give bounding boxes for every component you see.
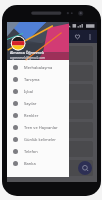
button[interactable] xyxy=(11,103,93,119)
button[interactable]: Banka xyxy=(7,157,69,169)
button[interactable] xyxy=(11,65,93,81)
button[interactable]: Günlük kelimeler xyxy=(7,133,69,145)
staticText: Tanışma xyxy=(24,77,40,82)
staticText: Merhabalaşma xyxy=(24,65,53,70)
staticText: Banka xyxy=(24,161,36,166)
button[interactable]: More options xyxy=(84,31,96,43)
staticText: Renkler xyxy=(24,113,39,118)
staticText: ogrenmek@gmail.com xyxy=(10,55,46,59)
button[interactable]: İçbal xyxy=(7,85,69,97)
staticText: Almanca Öğrenmek xyxy=(10,50,45,55)
button[interactable] xyxy=(11,46,93,62)
button[interactable]: Favorite xyxy=(71,30,84,43)
staticText: Tren ve Hayvanlar xyxy=(24,125,58,130)
button[interactable]: Tanışma xyxy=(7,73,69,85)
button[interactable] xyxy=(11,160,93,176)
button[interactable]: Almanca Öğrenmek xyxy=(7,22,69,60)
button[interactable]: Renkler xyxy=(7,109,69,121)
button[interactable]: Sayılar xyxy=(7,97,69,109)
button[interactable]: Telefon xyxy=(7,145,69,157)
staticText: Sayılar xyxy=(24,101,37,106)
staticText: İçbal xyxy=(24,89,34,94)
button[interactable]: Search xyxy=(78,161,92,175)
button[interactable] xyxy=(11,141,93,157)
button[interactable]: Merhabalaşma xyxy=(7,61,69,73)
button[interactable]: Tren ve Hayvanlar xyxy=(7,121,69,133)
button[interactable] xyxy=(11,122,93,138)
button[interactable] xyxy=(11,84,93,100)
staticText: Günlük kelimeler xyxy=(24,137,56,142)
staticText: Telefon xyxy=(24,149,38,154)
